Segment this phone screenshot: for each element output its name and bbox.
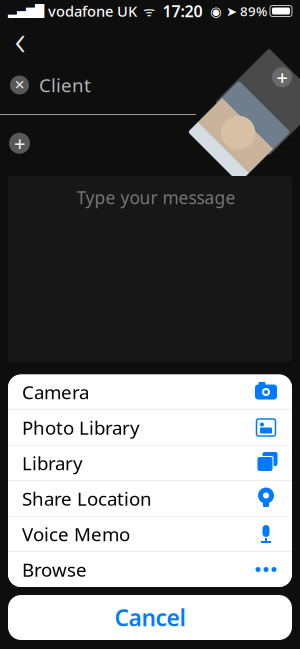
staticText: + — [276, 64, 287, 91]
button[interactable]: Add recipient — [0, 123, 30, 164]
staticText: ▂▄▆█ — [8, 4, 44, 18]
button[interactable]: Library — [8, 445, 292, 480]
button[interactable]: Back — [0, 22, 40, 56]
staticText: vodafone UK — [44, 1, 137, 21]
button[interactable]: Camera — [8, 374, 292, 409]
staticText: Share Location — [22, 486, 152, 511]
staticText: ◉ ➤ 89% — [210, 2, 267, 20]
staticText: ᯤ — [137, 2, 155, 20]
staticText: 17:20 — [162, 0, 202, 22]
button[interactable]: ✕ — [0, 67, 91, 103]
button[interactable]: Cancel — [8, 595, 292, 640]
staticText: Client — [39, 73, 91, 97]
staticText: ‹ — [14, 11, 25, 67]
staticText: Type your message — [76, 186, 235, 209]
staticText: Cancel — [114, 602, 185, 632]
staticText: Photo Library — [22, 415, 140, 440]
button[interactable]: Add attachment — [264, 56, 300, 99]
staticText: + — [14, 130, 25, 157]
staticText: ✕ — [14, 77, 25, 92]
staticText: Camera — [22, 380, 89, 404]
staticText: Voice Memo — [22, 522, 130, 546]
button[interactable]: Browse — [8, 552, 292, 587]
button[interactable]: Voice Memo — [8, 516, 292, 551]
staticText: Library — [22, 451, 83, 475]
staticText: Browse — [22, 557, 87, 582]
button[interactable]: Share Location — [8, 481, 292, 516]
button[interactable]: Photo Library — [8, 410, 292, 445]
